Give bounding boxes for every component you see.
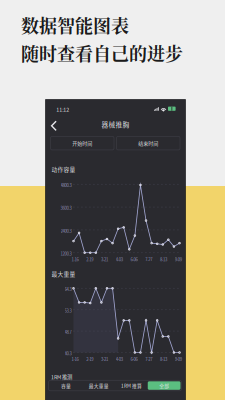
staticText: 3-21 [101, 256, 108, 262]
staticText: 4-03 [116, 356, 123, 362]
staticText: 最大重量 [51, 269, 75, 278]
staticText: 1-16 [71, 356, 78, 362]
staticText: 8-13 [160, 356, 167, 362]
staticText: 53.3 [64, 307, 71, 314]
staticText: 1200.3 [60, 250, 71, 257]
staticText: 数据智能图表 [21, 12, 129, 38]
staticText: 9-09 [175, 356, 182, 362]
staticText: 随时查看自己的进步 [21, 40, 183, 66]
staticText: 动作容量 [51, 165, 75, 173]
button[interactable]: 1RM 推算 [115, 381, 148, 390]
staticText: 9-09 [175, 256, 182, 262]
button[interactable]: 开始时间 [50, 136, 114, 150]
button[interactable]: 容量 [49, 381, 82, 390]
button[interactable]: 全部 [148, 381, 181, 390]
staticText: 器械推胸 [101, 119, 129, 129]
staticText: 全部 [159, 382, 169, 389]
staticText: 结束时间 [138, 139, 158, 147]
staticText: 48.7 [64, 329, 71, 335]
staticText: 1RM 推测 [51, 373, 72, 381]
staticText: 7-27 [145, 356, 152, 362]
staticText: 2-19 [86, 256, 93, 262]
staticText: 1RM 推算 [121, 382, 142, 389]
staticText: 开始时间 [72, 139, 92, 147]
staticText: 3-21 [101, 356, 108, 362]
staticText: 容量 [61, 382, 71, 389]
staticText: 2400.3 [60, 228, 71, 234]
staticText: 40.3 [64, 350, 71, 356]
staticText: 64.3 [64, 286, 71, 292]
button[interactable]: 结束时间 [116, 136, 180, 150]
staticText: 6-06 [130, 356, 137, 362]
staticText: 7-27 [145, 256, 152, 262]
staticText: 11:12 [56, 106, 69, 113]
staticText: 8-13 [160, 256, 167, 262]
staticText: 4-03 [116, 256, 123, 262]
button[interactable]: 返回 [47, 117, 62, 135]
staticText: 6-06 [130, 256, 137, 262]
staticText: 最大重量 [89, 382, 109, 389]
button[interactable]: 最大重量 [82, 381, 115, 390]
staticText: 1-16 [71, 256, 78, 262]
staticText: 3600.3 [60, 205, 71, 211]
staticText: 4800.3 [60, 182, 71, 188]
staticText: 2-19 [86, 356, 93, 362]
